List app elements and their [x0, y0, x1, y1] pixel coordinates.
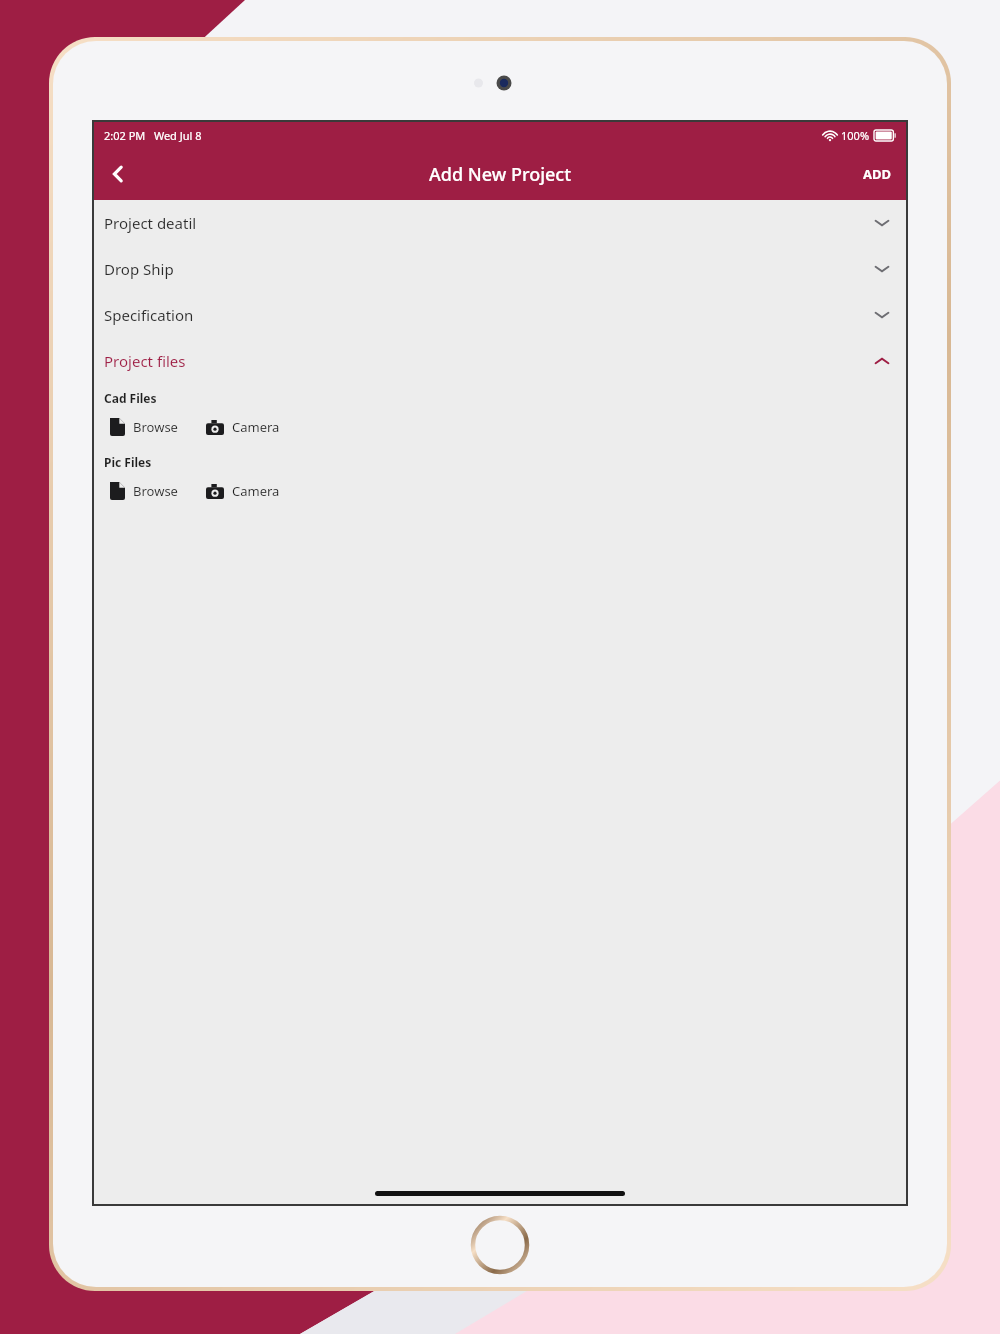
staticText: Pic Files [104, 454, 152, 470]
staticText: 2:02 PM Wed Jul 8 [104, 128, 202, 143]
button[interactable]: Project files [94, 338, 906, 384]
button[interactable]: Back [94, 150, 142, 198]
staticText: Camera [232, 418, 280, 436]
staticText: Camera [232, 482, 280, 500]
staticText: Specification [104, 305, 194, 325]
staticText: Browse [133, 418, 178, 436]
button[interactable]: Specification [94, 292, 906, 338]
button[interactable]: Drop Ship [94, 246, 906, 292]
staticText: ADD [863, 165, 892, 183]
button[interactable]: Browse [108, 416, 180, 438]
staticText: 100% [841, 128, 870, 143]
staticText: Add New Project [429, 162, 572, 187]
staticText: Cad Files [104, 390, 157, 406]
staticText: Browse [133, 482, 178, 500]
button[interactable]: Camera [204, 480, 282, 502]
staticText: Drop Ship [104, 259, 174, 279]
staticText: Project files [104, 351, 186, 371]
staticText: Project deatil [104, 213, 197, 233]
button[interactable]: Browse [108, 480, 180, 502]
button[interactable]: ADD [849, 153, 906, 195]
button[interactable]: Project deatil [94, 200, 906, 246]
button[interactable]: Camera [204, 416, 282, 438]
